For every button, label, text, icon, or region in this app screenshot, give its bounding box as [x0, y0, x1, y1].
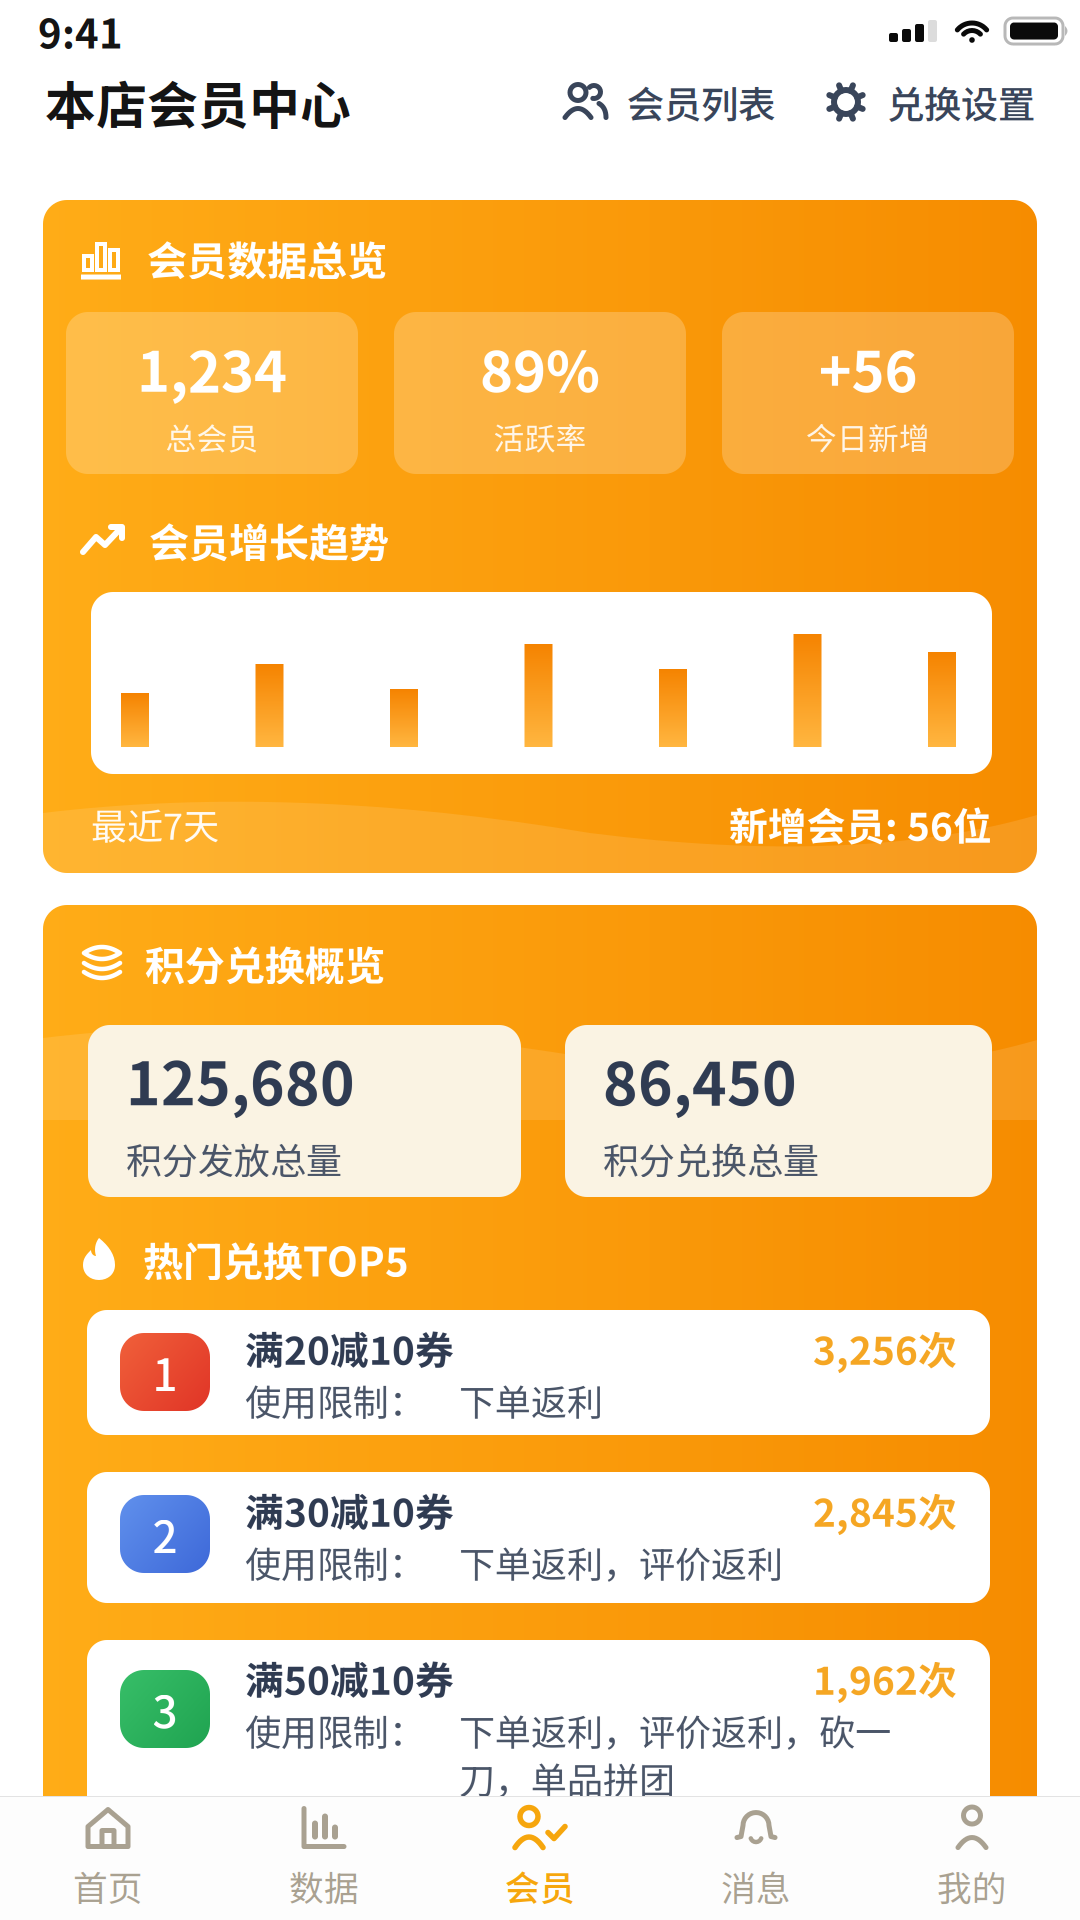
staticText: 下单返利，评价返利 — [459, 1537, 783, 1587]
staticText: 89% — [480, 328, 600, 407]
staticText: 积分兑换概览 — [145, 935, 385, 991]
staticText: 1,962次 — [813, 1651, 957, 1705]
staticText: 会员列表 — [627, 76, 775, 128]
staticText: 最近7天 — [91, 799, 219, 849]
staticText: 积分发放总量 — [126, 1133, 342, 1184]
staticText: 125,680 — [126, 1038, 355, 1121]
staticText: 首页 — [73, 1861, 143, 1910]
staticText: 数据 — [289, 1861, 359, 1910]
button[interactable]: 数据 — [216, 1797, 432, 1920]
staticText: 使用限制： — [245, 1375, 425, 1425]
staticText: 满30减10券 — [245, 1483, 454, 1537]
staticText: 86,450 — [603, 1038, 797, 1121]
staticText: 3,256次 — [813, 1321, 957, 1375]
button[interactable]: 兑换设置 — [825, 76, 1035, 128]
staticText: 2 — [152, 1503, 177, 1565]
staticText: 3 — [152, 1678, 177, 1740]
staticText: 1,234 — [137, 328, 287, 407]
staticText: 本店会员中心 — [45, 66, 351, 138]
button[interactable]: 我的 — [864, 1797, 1080, 1920]
button[interactable]: 首页 — [0, 1797, 216, 1920]
staticText: 2,845次 — [813, 1483, 957, 1537]
staticText: 新增会员: 56位 — [729, 797, 992, 851]
staticText: 活跃率 — [493, 415, 586, 458]
staticText: 下单返利 — [459, 1375, 603, 1425]
button[interactable]: 3 — [87, 1640, 990, 1840]
staticText: 会员增长趋势 — [149, 512, 389, 568]
button[interactable]: 2 — [87, 1472, 990, 1603]
staticText: 满20减10券 — [245, 1321, 454, 1375]
button[interactable]: 消息 — [648, 1797, 864, 1920]
staticText: 会员数据总览 — [147, 230, 387, 286]
staticText: 积分兑换总量 — [603, 1133, 819, 1184]
staticText: 热门兑换TOP5 — [143, 1231, 409, 1287]
staticText: 总会员 — [165, 415, 258, 458]
staticText: 1 — [152, 1341, 177, 1403]
staticText: 消息 — [721, 1861, 791, 1910]
staticText: 使用限制： — [245, 1537, 425, 1587]
staticText: +56 — [818, 328, 917, 407]
button[interactable]: 会员列表 — [563, 76, 775, 128]
staticText: 下单返利，评价返利，砍一 — [459, 1705, 891, 1755]
staticText: 会员 — [505, 1861, 575, 1910]
staticText: 我的 — [937, 1861, 1007, 1910]
staticText: 满50减10券 — [245, 1651, 454, 1705]
staticText: 兑换设置 — [887, 76, 1035, 128]
button[interactable]: 1 — [87, 1310, 990, 1435]
button[interactable]: 会员 — [432, 1797, 648, 1920]
staticText: 9:41 — [38, 3, 123, 59]
staticText: 刀，单品拼团 — [459, 1753, 675, 1803]
staticText: 使用限制： — [245, 1705, 425, 1755]
staticText: 今日新增 — [806, 415, 930, 458]
